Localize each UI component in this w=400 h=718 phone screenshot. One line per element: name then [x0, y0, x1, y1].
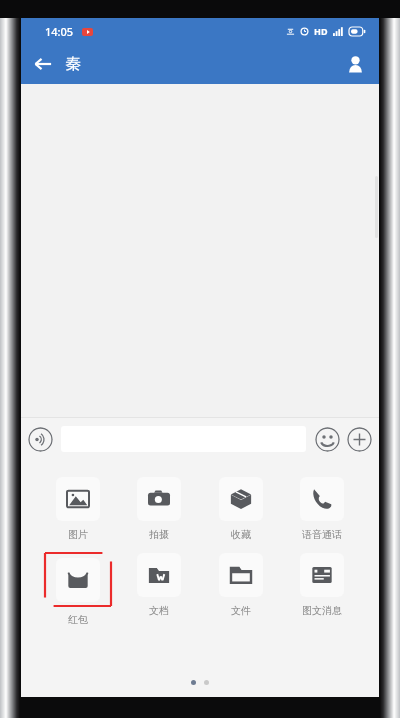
- staticText: 14:05: [45, 24, 74, 39]
- button[interactable]: Voice input: [28, 427, 53, 452]
- button[interactable]: 图文消息: [285, 553, 359, 617]
- button[interactable]: 红包: [41, 553, 115, 626]
- button[interactable]: Contact profile: [331, 44, 379, 84]
- staticText: 收藏: [231, 528, 251, 541]
- staticText: 图片: [68, 528, 88, 541]
- staticText: 文档: [149, 604, 169, 617]
- button[interactable]: 收藏: [204, 477, 278, 541]
- staticText: 拍摄: [149, 528, 169, 541]
- button[interactable]: 文件: [204, 553, 278, 617]
- button[interactable]: 语音通话: [285, 477, 359, 541]
- staticText: 红包: [68, 613, 88, 626]
- staticText: HD: [314, 25, 328, 37]
- button[interactable]: Back: [21, 44, 65, 84]
- button[interactable]: 拍摄: [122, 477, 196, 541]
- button[interactable]: Emoji: [315, 427, 340, 452]
- staticText: 秦: [65, 54, 81, 74]
- staticText: 文件: [231, 604, 251, 617]
- button[interactable]: 图片: [41, 477, 115, 541]
- staticText: 图文消息: [302, 604, 342, 617]
- staticText: 语音通话: [302, 528, 342, 541]
- button[interactable]: More attachments: [347, 427, 372, 452]
- button[interactable]: 文档: [122, 553, 196, 617]
